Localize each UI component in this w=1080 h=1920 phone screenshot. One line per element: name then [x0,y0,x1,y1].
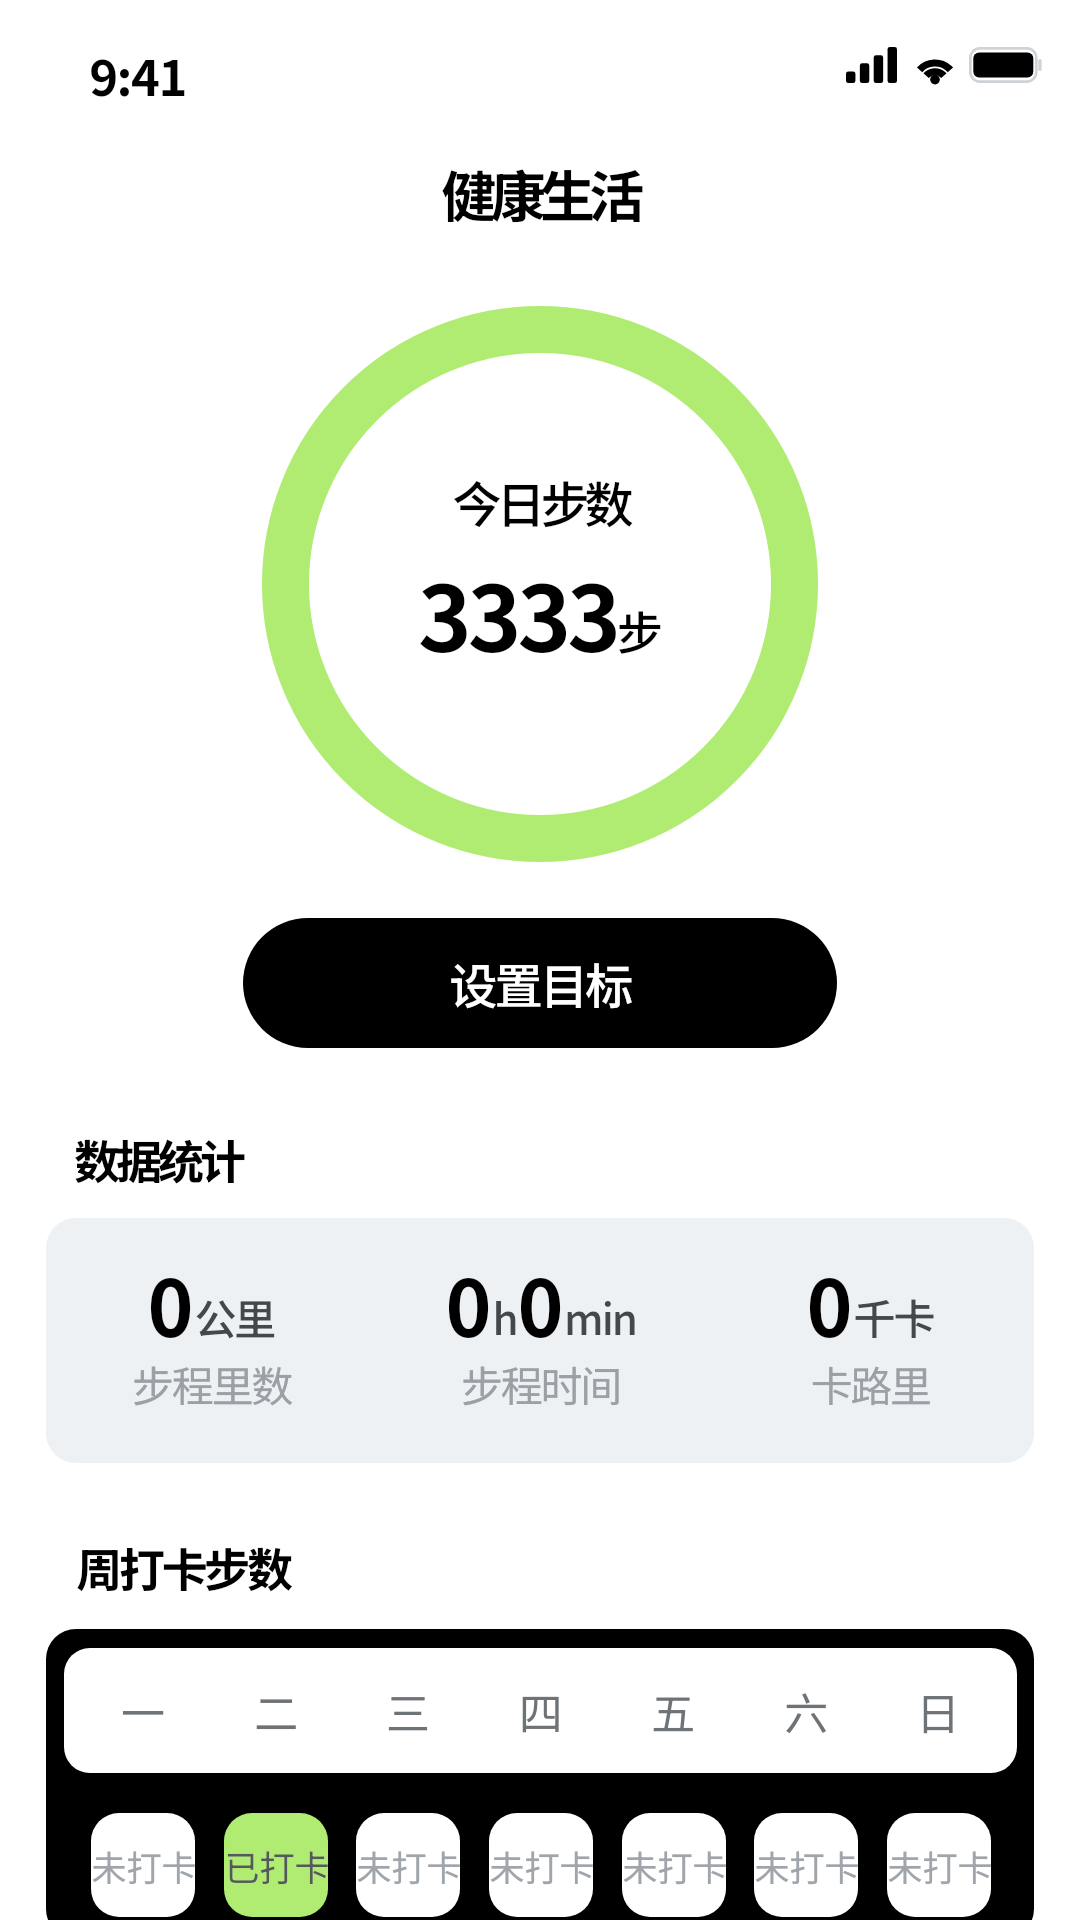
button[interactable]: 未打卡 [754,1813,858,1917]
staticText: 今日步数 [452,466,629,537]
other: Battery [969,47,1042,83]
staticText: 六 [784,1679,828,1743]
button[interactable]: 未打卡 [887,1813,991,1917]
button[interactable]: 已打卡 [224,1813,328,1917]
staticText: 未打卡 [489,1840,593,1891]
button[interactable]: 未打卡 [91,1813,195,1917]
staticText: 设置目标 [449,948,631,1018]
staticText: 0 [445,1247,492,1360]
staticText: 9:41 [89,39,186,110]
staticText: h [492,1286,517,1347]
staticText: 步 [617,597,663,664]
staticText: 步程里数 [132,1353,291,1414]
staticText: 一 [121,1679,165,1743]
staticText: 四 [519,1679,563,1743]
staticText: 未打卡 [356,1840,460,1891]
staticText: 0 [517,1247,564,1360]
staticText: 数据统计 [76,1126,244,1193]
button[interactable]: 未打卡 [622,1813,726,1917]
staticText: 千卡 [853,1286,934,1347]
staticText: 3333 [418,546,617,678]
staticText: 未打卡 [754,1840,858,1891]
button[interactable]: 设置目标 [243,918,837,1048]
staticText: 未打卡 [622,1840,726,1891]
staticText: 日 [916,1679,960,1743]
staticText: 步程时间 [461,1353,620,1414]
staticText: 未打卡 [887,1840,991,1891]
staticText: 已打卡 [224,1840,328,1891]
staticText: 未打卡 [91,1840,195,1891]
staticText: 二 [254,1679,298,1743]
staticText: 三 [386,1679,430,1743]
staticText: 周打卡步数 [76,1534,290,1601]
staticText: 卡路里 [810,1353,930,1414]
staticText: 0 [147,1247,194,1360]
button[interactable]: 未打卡 [489,1813,593,1917]
staticText: 五 [651,1679,695,1743]
other: Wi-Fi [912,47,958,83]
button[interactable]: 未打卡 [356,1813,460,1917]
staticText: 健康生活 [441,153,639,233]
staticText: min [564,1286,636,1347]
staticText: 0 [806,1247,853,1360]
other: Cellular signal [846,47,897,83]
staticText: 公里 [194,1286,275,1347]
